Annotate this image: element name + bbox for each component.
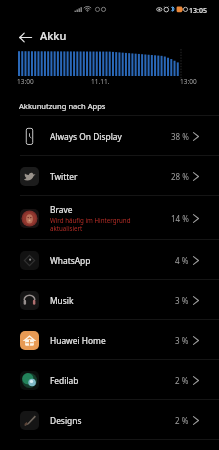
button[interactable]: Musik (0, 280, 219, 320)
staticText: WhatsApp (50, 255, 91, 266)
staticText: 38 % (171, 131, 189, 142)
staticText: Brave (50, 204, 73, 215)
staticText: Huawei Home (50, 335, 106, 346)
button[interactable]: Twitter (0, 156, 219, 196)
button[interactable]: Always On Display (0, 116, 219, 156)
staticText: 3 % (175, 335, 189, 346)
staticText: Akkunutzung nach Apps (19, 101, 106, 111)
staticText: Always On Display (50, 131, 122, 142)
staticText: 28 % (171, 171, 189, 182)
staticText: 2 % (175, 415, 189, 426)
staticText: 13:00 (180, 77, 197, 86)
staticText: 13:00 (17, 77, 34, 86)
staticText: 4 % (175, 255, 189, 266)
staticText: 3 % (175, 295, 189, 306)
button[interactable]: Huawei Home (0, 320, 219, 360)
button[interactable]: Designs (0, 400, 219, 440)
button[interactable]: Brave (0, 196, 219, 240)
staticText: 13:05 (189, 6, 207, 16)
staticText: Designs (50, 415, 82, 426)
staticText: Musik (50, 295, 74, 306)
staticText: 11.11. (91, 77, 110, 86)
button[interactable]: Back (15, 27, 36, 48)
staticText: 2 % (175, 375, 189, 386)
staticText: Twitter (50, 171, 78, 182)
staticText: 14 % (171, 213, 189, 224)
staticText: Fedilab (50, 375, 79, 386)
staticText: Wird häufig im Hintergrund aktualisiert (50, 216, 132, 232)
button[interactable]: WhatsApp (0, 240, 219, 280)
button[interactable]: Fedilab (0, 360, 219, 400)
staticText: Akku (40, 28, 67, 43)
